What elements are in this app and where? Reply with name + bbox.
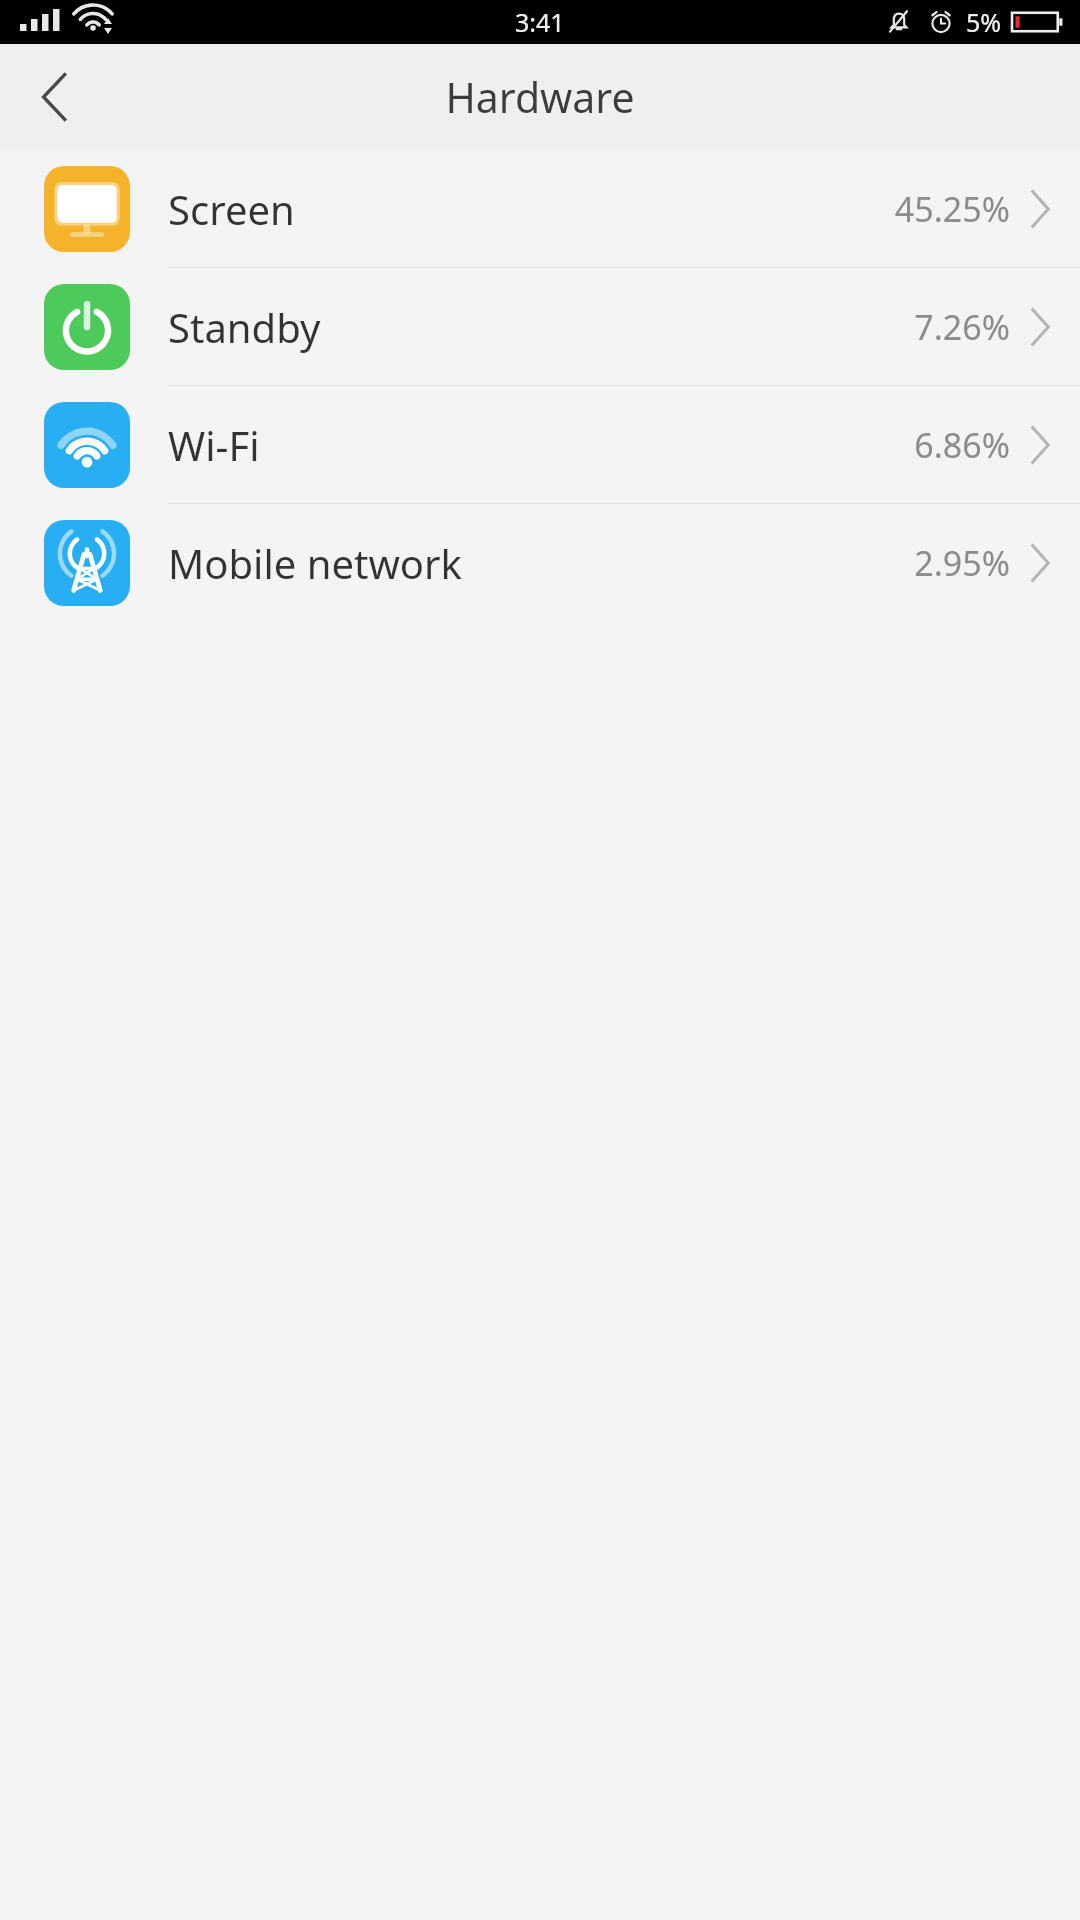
staticText: 7.26% (914, 304, 1010, 350)
staticText: Mobile network (168, 536, 914, 590)
staticText: 5% (966, 5, 1002, 39)
staticText: Standby (168, 300, 914, 354)
button[interactable]: Wi-Fi (0, 386, 1080, 503)
button[interactable]: Back (0, 44, 110, 150)
staticText: Screen (168, 182, 894, 236)
staticText: 2.95% (914, 540, 1010, 586)
staticText: 45.25% (894, 186, 1010, 232)
button[interactable]: Screen (0, 150, 1080, 267)
button[interactable]: Mobile network (0, 504, 1080, 621)
staticText: Wi-Fi (168, 418, 914, 472)
staticText: 3:41 (515, 5, 565, 39)
staticText: 6.86% (914, 422, 1010, 468)
button[interactable]: Standby (0, 268, 1080, 385)
staticText: Hardware (445, 69, 635, 125)
